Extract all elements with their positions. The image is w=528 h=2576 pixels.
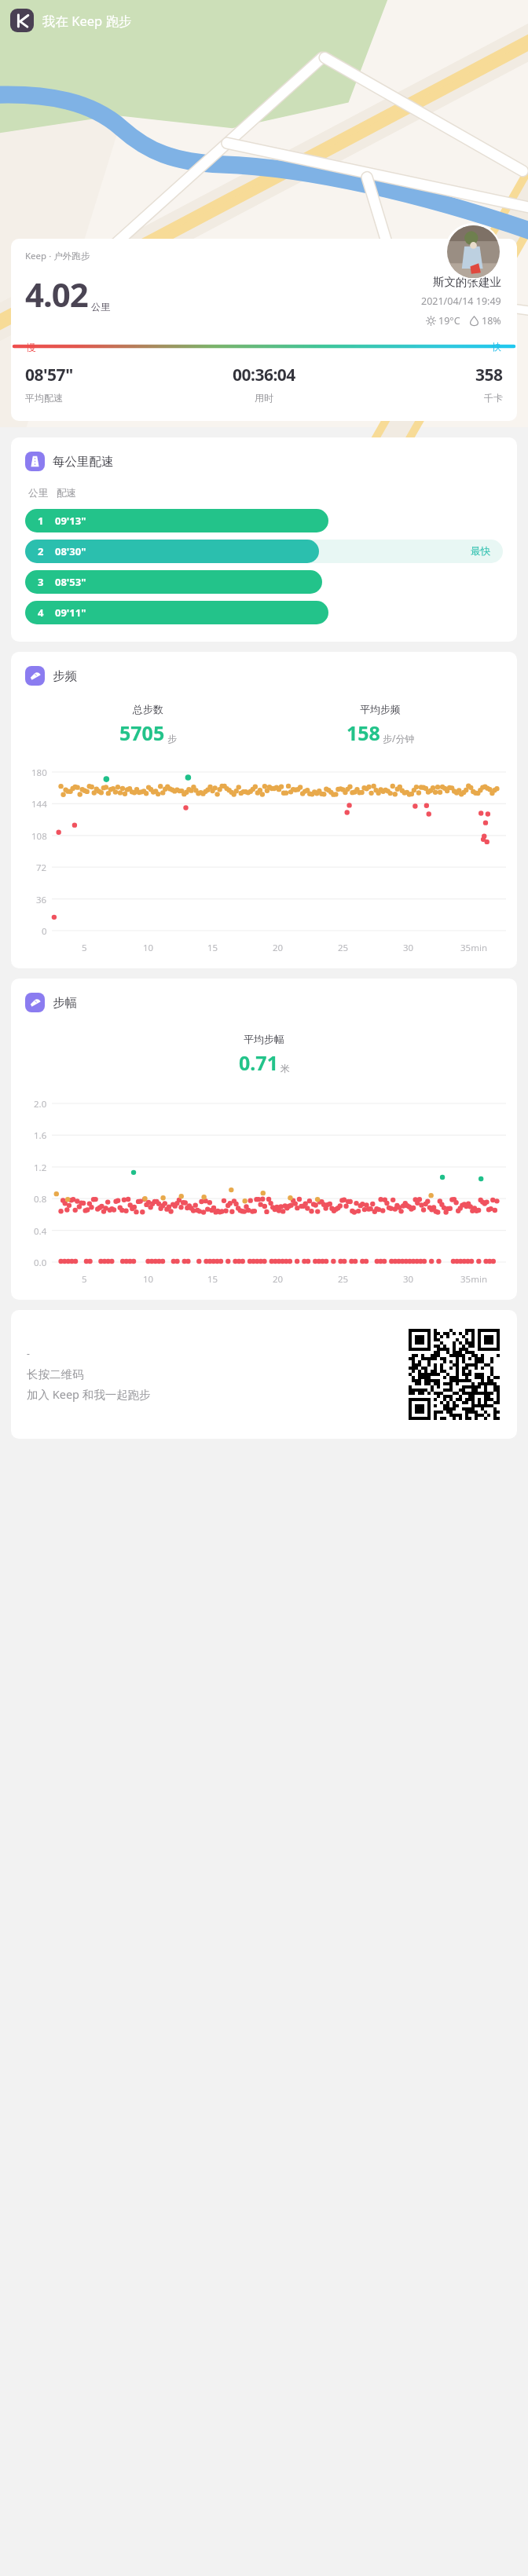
staticText: 4 (38, 606, 44, 620)
staticText: 09'13" (55, 514, 86, 528)
staticText: 18% (482, 314, 501, 327)
button[interactable]: Keep · 户外跑步 (11, 239, 517, 421)
staticText: 步/分钟 (383, 732, 415, 745)
staticText: 斯文的张建业 (433, 275, 501, 289)
staticText: 36 (36, 894, 47, 905)
staticText: 加入 Keep 和我一起跑步 (27, 1386, 151, 1402)
staticText: 平均步幅 (244, 1033, 284, 1045)
staticText: 步频 (53, 668, 77, 684)
staticText: 158 (346, 719, 380, 746)
staticText: 总步数 (133, 703, 163, 715)
staticText: 5 (82, 942, 87, 954)
staticText: 平均步频 (360, 703, 401, 715)
button[interactable]: 步频 (11, 652, 517, 968)
staticText: 0.8 (34, 1193, 47, 1204)
staticText: 长按二维码 (27, 1367, 84, 1381)
staticText: 15 (207, 1273, 218, 1286)
staticText: 用时 (255, 392, 273, 404)
staticText: 10 (143, 942, 154, 954)
staticText: 平均配速 (25, 392, 63, 404)
staticText: 慢 (27, 341, 36, 353)
staticText: 步 (167, 733, 177, 745)
staticText: Keep · 户外跑步 (25, 250, 90, 262)
staticText: 配速 (57, 487, 76, 499)
staticText: 180 (31, 767, 47, 778)
staticText: 2.0 (34, 1098, 47, 1109)
staticText: 30 (403, 942, 414, 954)
button[interactable]: 1 (25, 509, 503, 532)
staticText: 08'57" (25, 364, 73, 386)
staticText: 0.0 (34, 1257, 47, 1268)
staticText: 1 (38, 514, 44, 528)
button[interactable]: - (11, 1310, 517, 1439)
staticText: 15 (207, 942, 218, 954)
staticText: 108 (31, 830, 47, 841)
staticText: 每公里配速 (53, 454, 114, 470)
staticText: 08'30" (55, 544, 86, 558)
staticText: 2 (38, 544, 44, 558)
button[interactable]: Profile photo (445, 223, 501, 280)
staticText: 25 (338, 1273, 349, 1286)
button[interactable]: 最快 (25, 540, 503, 563)
staticText: 5 (82, 1273, 87, 1286)
staticText: 30 (403, 1273, 414, 1286)
button[interactable]: 4 (25, 601, 503, 624)
staticText: 08'53" (55, 575, 86, 589)
button[interactable]: 3 (25, 570, 503, 594)
staticText: 2021/04/14 19:49 (421, 295, 501, 308)
staticText: 35min (460, 942, 487, 954)
staticText: 5705 (119, 719, 165, 746)
staticText: 358 (475, 364, 503, 386)
button[interactable]: QR code (407, 1327, 501, 1422)
staticText: 20 (273, 942, 284, 954)
staticText: 快 (492, 341, 501, 353)
staticText: 72 (36, 862, 47, 873)
staticText: 0 (42, 925, 47, 936)
staticText: 千卡 (484, 392, 503, 404)
button[interactable]: 每公里配速 (11, 437, 517, 642)
staticText: 144 (31, 798, 47, 809)
staticText: 10 (143, 1273, 154, 1286)
staticText: 步幅 (53, 995, 77, 1011)
staticText: 公里 (91, 301, 110, 313)
staticText: 1.6 (34, 1129, 47, 1140)
staticText: 19°C (438, 314, 460, 327)
staticText: 0.4 (34, 1225, 47, 1236)
staticText: 00:36:04 (233, 364, 295, 386)
staticText: 米 (280, 1063, 290, 1074)
staticText: 1.2 (34, 1162, 47, 1173)
staticText: 20 (273, 1273, 284, 1286)
button[interactable]: 我在 Keep 跑步 (10, 9, 132, 32)
staticText: 公里 (28, 487, 48, 499)
button[interactable]: 步幅 (11, 979, 517, 1300)
staticText: 我在 Keep 跑步 (42, 12, 132, 30)
staticText: 35min (460, 1273, 487, 1286)
staticText: 0.71 (239, 1049, 278, 1076)
staticText: 09'11" (55, 606, 86, 620)
staticText: 最快 (471, 545, 490, 558)
staticText: 25 (338, 942, 349, 954)
staticText: 3 (38, 575, 44, 589)
staticText: 4.02 (25, 272, 88, 317)
staticText: - (27, 1347, 30, 1359)
